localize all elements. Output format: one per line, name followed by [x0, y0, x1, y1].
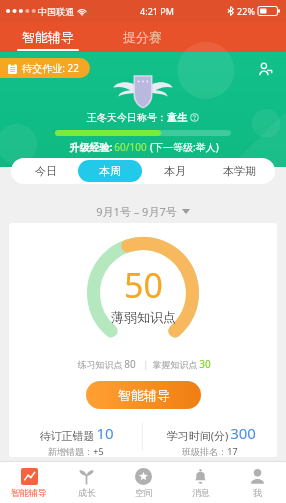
button[interactable]: Profile — [252, 56, 278, 82]
button[interactable]: 今日 — [14, 160, 78, 182]
staticText: 空间 — [135, 487, 153, 498]
button[interactable]: 智能辅导 — [86, 381, 201, 409]
button[interactable]: 成长 — [58, 462, 115, 503]
staticText: 10 — [96, 423, 114, 443]
button[interactable]: 本月 — [142, 160, 207, 182]
staticText: 智能辅导 — [22, 29, 74, 45]
staticText: 我 — [253, 487, 262, 498]
staticText: 本学期 — [223, 164, 256, 178]
staticText: 王冬天今日称号： — [87, 111, 167, 124]
staticText: 掌握知识点 — [151, 358, 199, 370]
staticText: 智能辅导 — [118, 387, 170, 403]
staticText: 300 — [230, 423, 256, 443]
button[interactable]: 消息 — [172, 462, 229, 503]
staticText: 17 — [227, 445, 238, 457]
staticText: 80 — [124, 357, 136, 371]
button[interactable]: 本学期 — [207, 160, 272, 182]
staticText: 班级排名： — [182, 446, 227, 457]
staticText: 消息 — [192, 487, 210, 498]
staticText: 本周 — [99, 164, 121, 178]
staticText: 待交作业: 22 — [22, 61, 79, 75]
button[interactable]: 学习时间(分) — [143, 423, 277, 457]
staticText: 练习知识点 — [76, 358, 124, 370]
staticText: 中国联通 — [38, 6, 74, 17]
button[interactable]: 本周 — [78, 160, 142, 182]
button[interactable]: 待订正错题 — [9, 423, 142, 457]
staticText: 成长 — [78, 487, 96, 498]
staticText: 30 — [199, 357, 211, 371]
staticText: 待订正错题 — [38, 428, 96, 443]
staticText: 学习时间(分) — [165, 428, 230, 443]
button[interactable]: 9月1号 – 9月7号 — [0, 199, 286, 223]
staticText: 童生 — [167, 111, 187, 124]
staticText: (下一等级:举人) — [147, 140, 219, 154]
staticText: | — [136, 358, 151, 370]
button[interactable]: 待交作业: 22 — [8, 58, 79, 78]
staticText: 22% — [237, 5, 255, 17]
staticText: 今日 — [35, 164, 57, 178]
staticText: 升级经验: — [68, 140, 114, 154]
staticText: 新增错题： — [48, 446, 93, 457]
button[interactable]: 智能辅导 — [0, 462, 58, 503]
button[interactable]: 我 — [229, 462, 286, 503]
staticText: 4:21 PM — [140, 5, 174, 17]
button[interactable]: 提分赛 — [95, 22, 190, 52]
staticText: 薄弱知识点 — [111, 309, 176, 325]
button[interactable]: 智能辅导 — [0, 22, 95, 52]
staticText: 50 — [124, 262, 163, 308]
staticText: 智能辅导 — [11, 487, 47, 498]
staticText: 9月1号 – 9月7号 — [96, 204, 177, 219]
staticText: 本月 — [164, 164, 186, 178]
button[interactable]: 空间 — [115, 462, 172, 503]
staticText: 60/100 — [114, 140, 147, 154]
staticText: +5 — [93, 445, 104, 457]
staticText: 提分赛 — [123, 29, 162, 45]
